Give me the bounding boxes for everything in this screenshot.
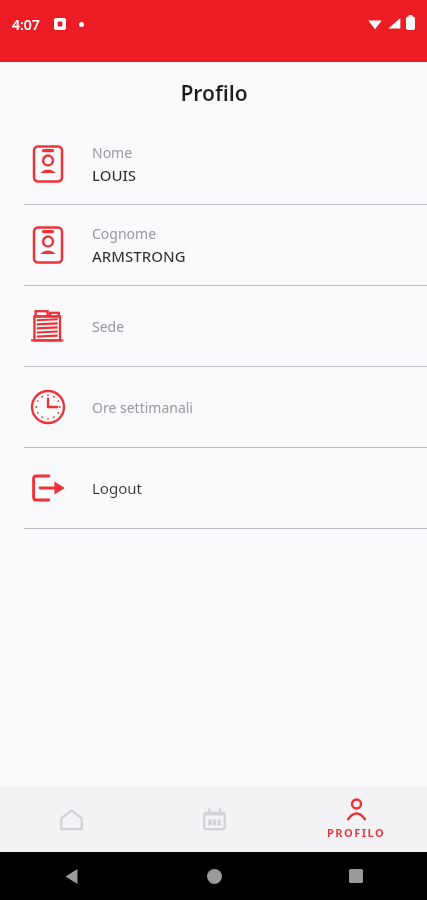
button[interactable]: Home — [0, 786, 143, 852]
staticText: Ore settimanali — [92, 398, 193, 417]
button[interactable]: Logout — [0, 448, 427, 528]
staticText: Profilo — [180, 79, 248, 108]
button[interactable]: PROFILO — [285, 786, 427, 852]
button[interactable]: Sede — [0, 286, 427, 366]
staticText: 4:07 — [12, 15, 40, 34]
button[interactable]: Cognome — [0, 205, 427, 285]
staticText: Logout — [92, 478, 142, 498]
staticText: LOUIS — [92, 165, 137, 185]
button[interactable]: Nome — [0, 124, 427, 204]
button[interactable]: Calendario — [143, 786, 285, 852]
staticText: PROFILO — [327, 825, 386, 840]
staticText: ARMSTRONG — [92, 246, 186, 266]
staticText: Cognome — [92, 224, 157, 243]
staticText: Nome — [92, 143, 133, 162]
staticText: Sede — [92, 317, 125, 336]
button[interactable]: Ore settimanali — [0, 367, 427, 447]
